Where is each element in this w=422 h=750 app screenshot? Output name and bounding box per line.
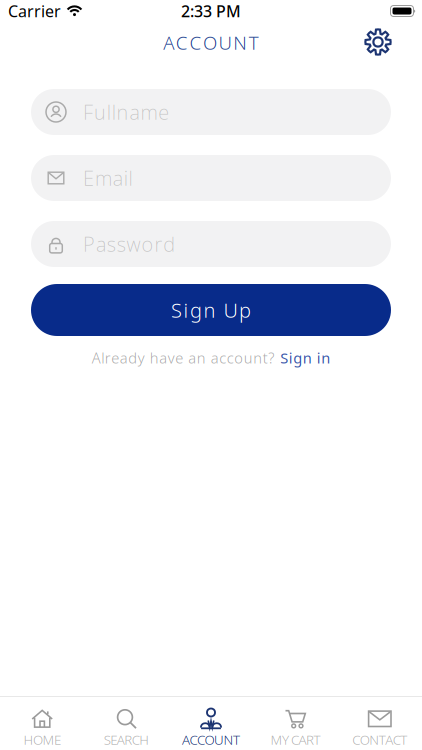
staticText: n (117, 99, 129, 125)
staticText: O (203, 30, 217, 55)
staticText: E (110, 731, 117, 748)
staticText: A (182, 731, 190, 748)
staticText: u (94, 99, 106, 125)
staticText: A (163, 30, 174, 55)
staticText: i (317, 348, 321, 367)
staticText: U (219, 30, 232, 55)
staticText: i (124, 165, 128, 191)
button[interactable]: E (31, 155, 391, 201)
staticText: t (263, 348, 268, 367)
staticText: m (140, 99, 157, 125)
staticText: C (393, 731, 401, 748)
staticText: A (298, 731, 306, 748)
staticText: c (227, 348, 234, 367)
staticText: C (189, 30, 201, 55)
staticText: a (159, 348, 167, 367)
staticText: s (117, 231, 126, 257)
staticText: l (129, 165, 133, 191)
button[interactable]: S (280, 348, 330, 367)
staticText: N (369, 731, 379, 748)
staticText: T (233, 731, 240, 748)
staticText: N (223, 731, 233, 748)
staticText: r (154, 231, 162, 257)
staticText: i (289, 348, 293, 367)
staticText: o (234, 348, 243, 367)
staticText: E (54, 731, 61, 748)
staticText: h (150, 348, 159, 367)
staticText: n (197, 348, 206, 367)
staticText: o (141, 231, 153, 257)
staticText: n (203, 297, 215, 323)
staticText: Carrier (8, 0, 61, 22)
staticText: O (33, 731, 43, 748)
staticText: g (293, 348, 302, 367)
staticText: U (223, 297, 237, 323)
staticText: C (352, 731, 360, 748)
staticText: y (138, 348, 145, 367)
staticText: N (233, 30, 247, 55)
staticText: a (120, 348, 128, 367)
button[interactable]: Settings (363, 27, 393, 57)
staticText: H (23, 731, 33, 748)
staticText: d (128, 348, 137, 367)
staticText: a (211, 348, 219, 367)
staticText: n (321, 348, 330, 367)
button[interactable]: P (31, 221, 391, 267)
button[interactable]: S (84, 708, 169, 748)
staticText: T (379, 731, 386, 748)
staticText: l (101, 348, 104, 367)
staticText: ? (268, 348, 274, 367)
staticText: M (42, 731, 54, 748)
staticText: v (168, 348, 175, 367)
staticText: O (360, 731, 370, 748)
staticText: Y (282, 731, 289, 748)
staticText: F (83, 99, 93, 125)
staticText: d (163, 231, 175, 257)
staticText: C (291, 731, 299, 748)
button[interactable]: C (338, 708, 422, 748)
staticText: C (176, 30, 188, 55)
staticText: C (132, 731, 140, 748)
button[interactable]: A (169, 708, 253, 748)
button[interactable]: F (31, 89, 391, 135)
staticText: r (105, 348, 111, 367)
staticText: g (190, 297, 202, 323)
staticText: S (104, 731, 111, 748)
staticText: C (197, 731, 205, 748)
staticText: E (83, 165, 94, 191)
button[interactable]: H (0, 708, 84, 748)
staticText: p (239, 297, 251, 323)
staticText: a (113, 165, 123, 191)
staticText: T (313, 731, 320, 748)
staticText: T (249, 30, 259, 55)
staticText: i (183, 297, 188, 323)
staticText: R (306, 731, 314, 748)
staticText: s (107, 231, 116, 257)
button[interactable]: M (253, 708, 338, 748)
staticText: n (303, 348, 312, 367)
staticText: l (112, 99, 116, 125)
staticText: e (175, 348, 183, 367)
staticText: u (244, 348, 253, 367)
staticText (288, 731, 291, 748)
staticText: A (385, 731, 393, 748)
staticText: M (270, 731, 282, 748)
staticText: R (124, 731, 132, 748)
staticText: A (117, 731, 125, 748)
staticText: c (219, 348, 226, 367)
staticText: P (83, 231, 95, 257)
staticText: n (253, 348, 262, 367)
staticText: a (129, 99, 139, 125)
staticText: a (96, 231, 106, 257)
staticText: e (111, 348, 119, 367)
staticText: T (400, 731, 407, 748)
staticText: e (158, 99, 169, 125)
staticText: O (204, 731, 214, 748)
staticText: A (92, 348, 101, 367)
button[interactable]: S (31, 284, 391, 336)
staticText: U (214, 731, 224, 748)
